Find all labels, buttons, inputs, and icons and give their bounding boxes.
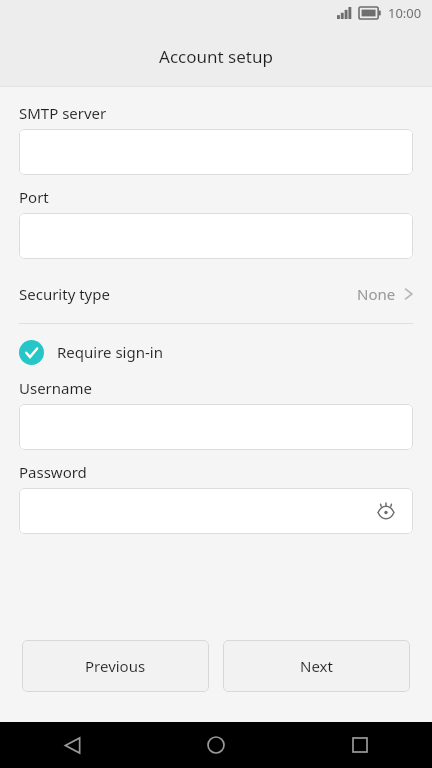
staticText: Next bbox=[300, 656, 333, 676]
button[interactable]: Require sign-in bbox=[0, 336, 432, 368]
staticText: Port bbox=[19, 187, 49, 207]
button[interactable]: Home bbox=[144, 722, 288, 768]
button[interactable]: Previous bbox=[22, 640, 209, 692]
button[interactable] bbox=[19, 213, 413, 259]
staticText: None bbox=[357, 284, 396, 304]
button[interactable]: Recent apps bbox=[288, 722, 432, 768]
staticText: SMTP server bbox=[19, 103, 107, 123]
button[interactable]: Show password bbox=[19, 488, 413, 534]
button[interactable]: Show password bbox=[371, 496, 401, 526]
button[interactable]: Security type bbox=[0, 277, 432, 311]
button[interactable] bbox=[19, 129, 413, 175]
staticText: Require sign-in bbox=[57, 342, 163, 362]
button[interactable] bbox=[19, 404, 413, 450]
staticText: Account setup bbox=[159, 45, 273, 68]
staticText: Username bbox=[19, 378, 92, 398]
staticText: Security type bbox=[19, 284, 110, 304]
button[interactable]: Next bbox=[223, 640, 410, 692]
staticText: 10:00 bbox=[388, 4, 422, 22]
staticText: Previous bbox=[85, 656, 146, 676]
staticText: Password bbox=[19, 462, 87, 482]
button[interactable]: Back bbox=[0, 722, 144, 768]
